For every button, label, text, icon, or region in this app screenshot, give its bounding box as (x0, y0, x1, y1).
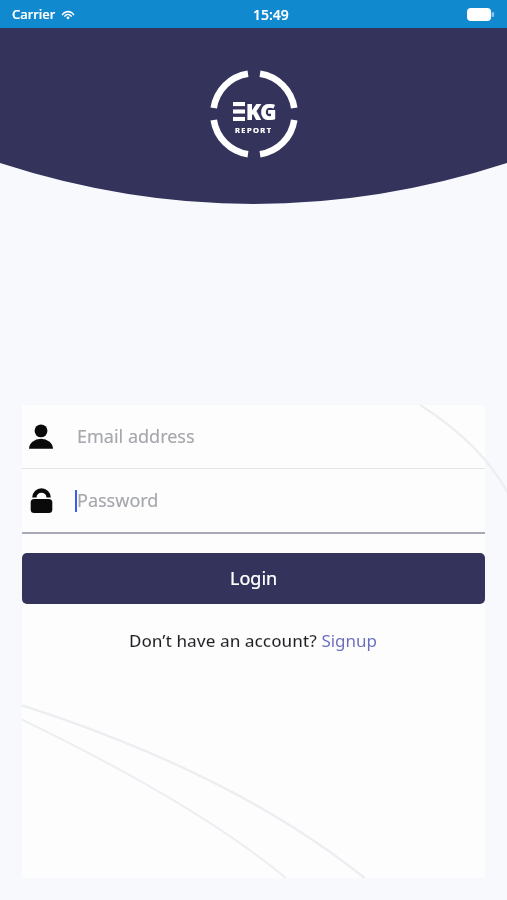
staticText: 15:49 (253, 5, 289, 24)
staticText: REPORT (235, 125, 273, 135)
button[interactable]: Login (22, 553, 485, 604)
staticText: Login (230, 566, 278, 591)
staticText: Carrier (12, 5, 56, 23)
other: Email address (26, 422, 56, 452)
staticText: KG (246, 96, 276, 126)
button[interactable]: Password (22, 469, 485, 532)
button[interactable]: Don’t have an account? Signup (22, 629, 485, 652)
other: Password (28, 487, 55, 514)
staticText: Email address (77, 424, 195, 449)
button[interactable]: Email address (22, 405, 485, 468)
staticText: Password (77, 488, 159, 513)
staticText: Don’t have an account? Signup (129, 629, 378, 652)
